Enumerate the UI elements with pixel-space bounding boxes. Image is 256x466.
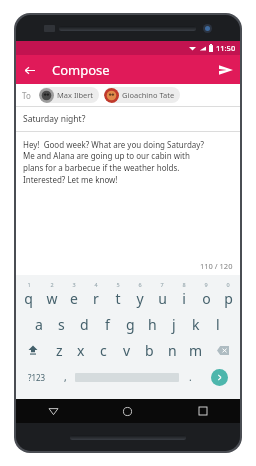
staticText: p bbox=[224, 289, 233, 308]
button[interactable]: . bbox=[179, 363, 201, 391]
staticText: t bbox=[115, 289, 121, 308]
button[interactable]: d bbox=[73, 311, 96, 337]
staticText: v bbox=[123, 341, 131, 360]
button[interactable]: Backspace bbox=[207, 337, 239, 363]
staticText: o bbox=[202, 289, 211, 308]
staticText: e bbox=[70, 289, 78, 308]
button[interactable]: Home bbox=[90, 399, 165, 423]
staticText: 110 / 120 bbox=[200, 261, 233, 271]
staticText: 1 bbox=[27, 281, 31, 288]
button[interactable]: x bbox=[70, 337, 92, 363]
staticText: 6 bbox=[138, 281, 142, 288]
button[interactable]: 6 bbox=[129, 281, 151, 311]
button[interactable]: 8 bbox=[173, 281, 195, 311]
button[interactable]: k bbox=[185, 311, 207, 337]
staticText: u bbox=[158, 289, 167, 308]
button[interactable]: l bbox=[207, 311, 229, 337]
button[interactable]: 0 bbox=[217, 281, 239, 311]
button[interactable]: 1 bbox=[17, 281, 40, 311]
button[interactable]: j bbox=[163, 311, 185, 337]
staticText: j bbox=[172, 315, 176, 334]
staticText: To bbox=[22, 90, 31, 101]
button[interactable]: v bbox=[115, 337, 138, 363]
button[interactable]: , bbox=[55, 363, 75, 391]
staticText: r bbox=[93, 289, 99, 308]
button[interactable]: Recents bbox=[165, 399, 240, 423]
staticText: 11:50 bbox=[216, 43, 236, 53]
staticText: k bbox=[192, 315, 200, 334]
button[interactable]: Space bbox=[75, 371, 179, 383]
button[interactable]: z bbox=[48, 337, 70, 363]
button[interactable]: Shift bbox=[17, 337, 48, 363]
staticText: 5 bbox=[116, 281, 120, 288]
staticText: w bbox=[46, 289, 58, 308]
staticText: b bbox=[145, 341, 154, 360]
staticText: 2 bbox=[50, 281, 54, 288]
button[interactable]: 7 bbox=[151, 281, 173, 311]
staticText: . bbox=[189, 370, 192, 384]
staticText: n bbox=[168, 341, 177, 360]
staticText: 4 bbox=[94, 281, 98, 288]
staticText: s bbox=[58, 315, 65, 334]
staticText: d bbox=[80, 315, 89, 334]
button[interactable]: Back bbox=[16, 57, 42, 83]
button[interactable]: m bbox=[184, 337, 207, 363]
staticText: q bbox=[24, 289, 33, 308]
staticText: Gioachino Tate bbox=[122, 90, 175, 100]
button[interactable]: a bbox=[27, 311, 50, 337]
button[interactable]: f bbox=[96, 311, 119, 337]
staticText: 8 bbox=[182, 281, 186, 288]
staticText: l bbox=[216, 315, 220, 334]
staticText: x bbox=[77, 341, 85, 360]
button[interactable]: Back bbox=[16, 399, 90, 423]
staticText: c bbox=[100, 341, 107, 360]
button[interactable]: Gioachino Tate bbox=[104, 87, 180, 103]
staticText: a bbox=[35, 315, 43, 334]
staticText: m bbox=[189, 341, 203, 360]
staticText: ?123 bbox=[28, 372, 46, 383]
staticText: 7 bbox=[160, 281, 164, 288]
button[interactable]: Max Ilbert bbox=[39, 87, 99, 103]
staticText: Hey! Good week? What are you doing Satur… bbox=[23, 139, 205, 186]
button[interactable]: ?123 bbox=[18, 363, 55, 391]
button[interactable]: 2 bbox=[40, 281, 63, 311]
button[interactable]: 4 bbox=[85, 281, 107, 311]
button[interactable]: Enter bbox=[201, 363, 238, 391]
staticText: Max Ilbert bbox=[57, 90, 94, 100]
staticText: y bbox=[136, 289, 144, 308]
button[interactable]: c bbox=[92, 337, 115, 363]
staticText: Saturday night? bbox=[23, 113, 86, 125]
button[interactable]: Send bbox=[212, 56, 240, 84]
staticText: z bbox=[56, 341, 63, 360]
button[interactable]: 3 bbox=[63, 281, 85, 311]
staticText: h bbox=[148, 315, 157, 334]
button[interactable]: 5 bbox=[107, 281, 129, 311]
staticText: , bbox=[64, 370, 67, 384]
button[interactable]: h bbox=[141, 311, 163, 337]
button[interactable]: n bbox=[161, 337, 184, 363]
staticText: g bbox=[126, 315, 135, 334]
staticText: Compose bbox=[52, 61, 110, 79]
staticText: 9 bbox=[204, 281, 208, 288]
button[interactable]: g bbox=[119, 311, 141, 337]
staticText: 0 bbox=[226, 281, 230, 288]
staticText: i bbox=[182, 289, 186, 308]
button[interactable]: s bbox=[50, 311, 73, 337]
staticText: 3 bbox=[72, 281, 76, 288]
button[interactable]: 9 bbox=[195, 281, 217, 311]
button[interactable]: b bbox=[138, 337, 161, 363]
staticText: f bbox=[105, 315, 110, 334]
